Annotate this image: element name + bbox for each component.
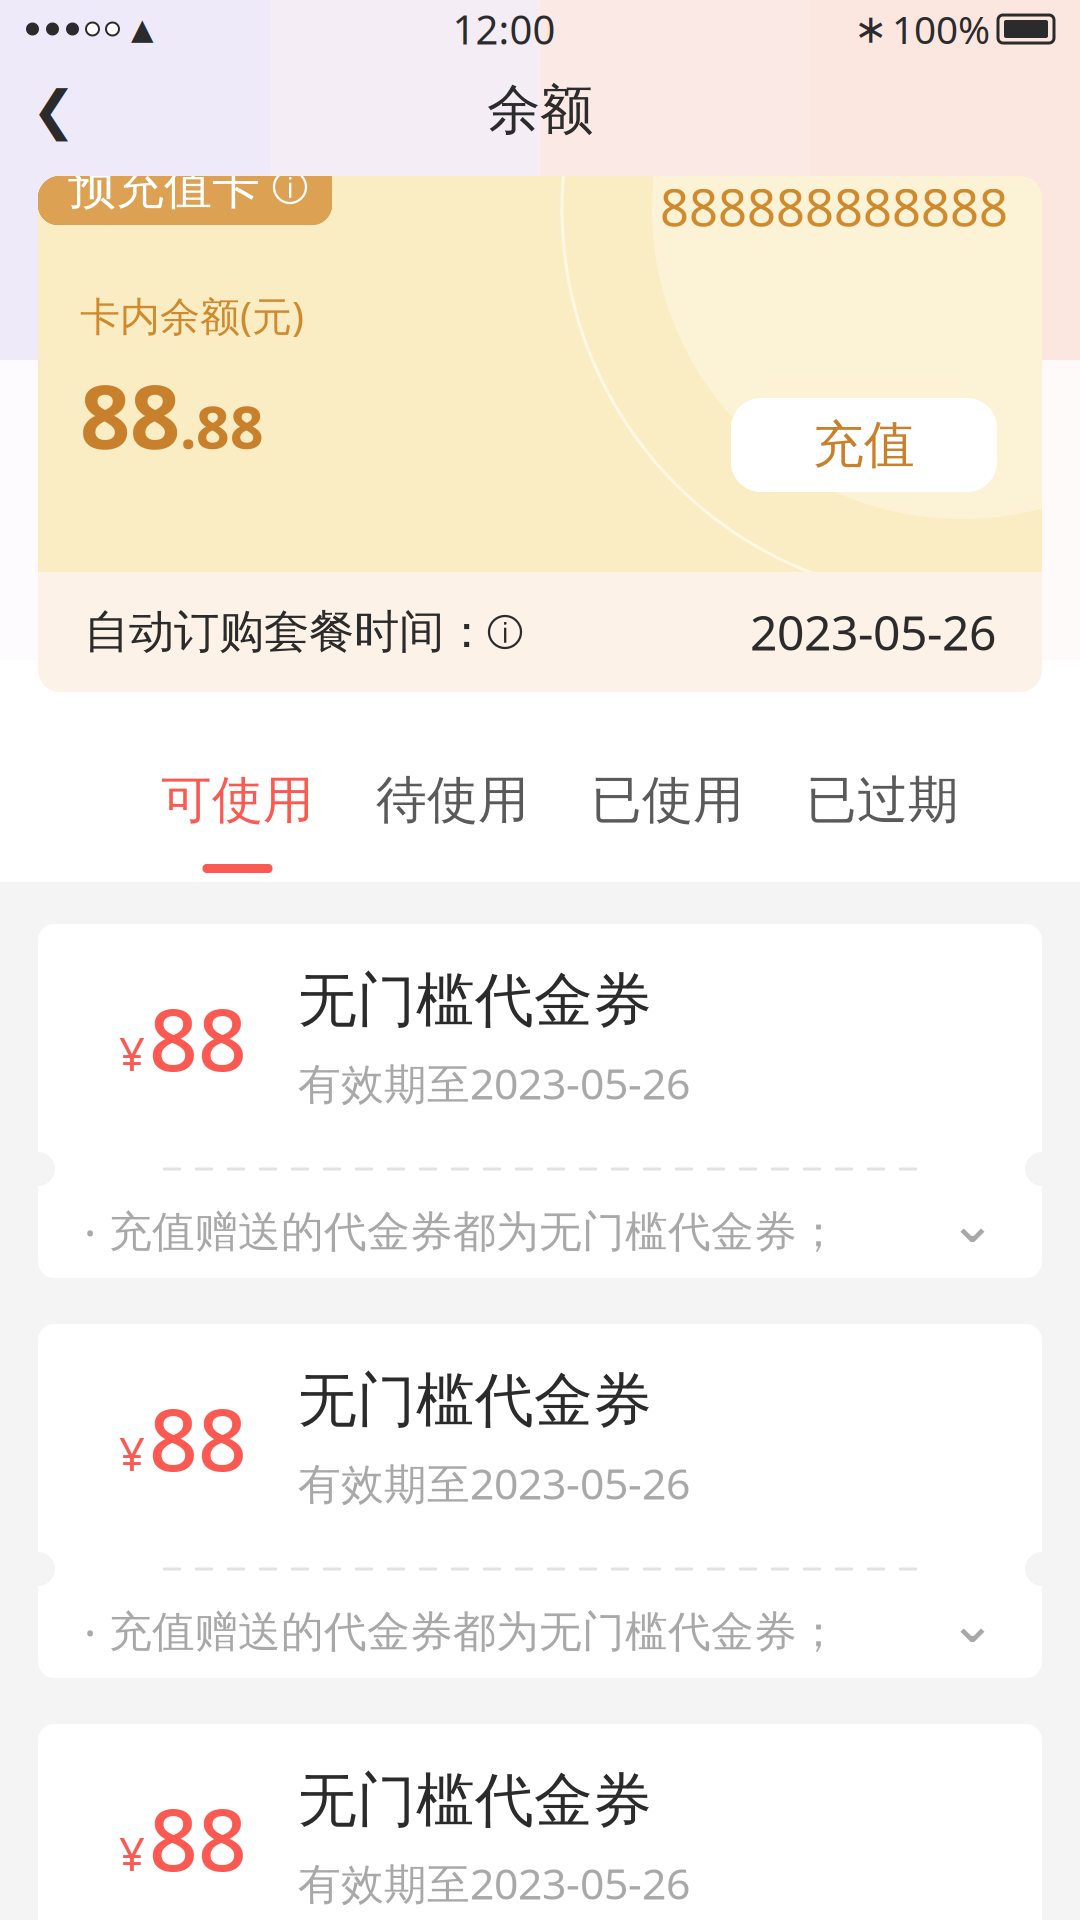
button[interactable]: 充值 [731, 398, 997, 492]
button[interactable]: 已使用 [560, 741, 775, 873]
button[interactable]: 已过期 [775, 741, 990, 873]
staticText: 无门槛代金券 [298, 1765, 652, 1837]
staticText: 2023-05-26 [750, 600, 996, 664]
staticText: · [84, 1602, 96, 1662]
staticText: ⌄ [949, 1591, 996, 1655]
staticText: .88 [180, 387, 264, 465]
button[interactable]: ¥ [38, 924, 1042, 1278]
staticText: 已使用 [591, 769, 744, 831]
staticText: 888888888888 [660, 173, 1008, 240]
staticText: 有效期至2023-05-26 [298, 1055, 690, 1111]
staticText: ❮ [31, 80, 76, 140]
staticText: 100% [892, 3, 990, 55]
staticText: 卡内余额(元) [80, 289, 304, 342]
staticText: ∗ [854, 6, 888, 52]
staticText: 预充值卡 [68, 157, 260, 216]
staticText: 已过期 [806, 769, 959, 831]
button[interactable]: ¥ [38, 1324, 1042, 1678]
staticText: 有效期至2023-05-26 [298, 1855, 690, 1911]
staticText: 12:00 [452, 2, 555, 55]
button[interactable]: 待使用 [345, 741, 560, 873]
button[interactable]: 可使用 [130, 741, 345, 873]
staticText: 充值 [813, 414, 915, 476]
staticText: 无门槛代金券 [298, 1365, 652, 1437]
staticText: 88 [80, 356, 180, 473]
staticText: ¥ [119, 1423, 145, 1484]
button[interactable]: ¥ [38, 1724, 1042, 1920]
staticText: 可使用 [161, 769, 314, 831]
staticText: i [501, 613, 508, 651]
staticText: 88 [149, 1781, 247, 1895]
staticText: 充值赠送的代金券都为无门槛代金券； [96, 1206, 840, 1258]
staticText: 88 [149, 1381, 247, 1495]
staticText: i [286, 168, 293, 206]
staticText: 待使用 [376, 769, 529, 831]
staticText: 余额 [487, 77, 593, 143]
staticText: ¥ [119, 1023, 145, 1084]
staticText: ⌄ [949, 1191, 996, 1255]
staticText: · [84, 1202, 96, 1262]
staticText: 有效期至2023-05-26 [298, 1455, 690, 1511]
staticText: 充值赠送的代金券都为无门槛代金券； [96, 1606, 840, 1658]
staticText: 无门槛代金券 [298, 965, 652, 1037]
staticText: 88 [149, 981, 247, 1095]
staticText: ▲ [131, 12, 154, 46]
staticText: ¥ [119, 1823, 145, 1884]
staticText: 自动订购套餐时间： [84, 604, 489, 660]
button[interactable]: Back [14, 70, 94, 150]
